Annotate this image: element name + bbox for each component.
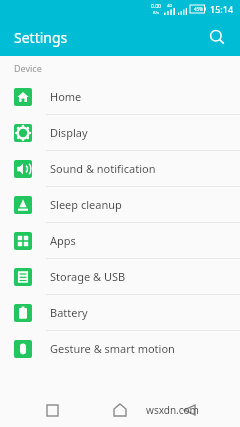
staticText: 0.00 (151, 3, 161, 10)
staticText: 45% (194, 6, 203, 12)
button[interactable]: Home (0, 79, 240, 115)
staticText: Gesture & smart motion (50, 341, 175, 356)
staticText: Storage & USB (50, 269, 126, 284)
staticText: Settings (14, 28, 68, 47)
staticText: K/s (153, 10, 159, 15)
staticText: Battery (50, 305, 88, 320)
button[interactable]: Sound & notification (0, 151, 240, 187)
button[interactable]: Recent apps (35, 393, 69, 427)
button[interactable]: Apps (0, 223, 240, 259)
button[interactable]: Search (202, 22, 232, 52)
button[interactable]: Storage & USB (0, 259, 240, 295)
button[interactable]: Display (0, 115, 240, 151)
staticText: Sleep cleanup (50, 197, 122, 212)
button[interactable]: Gesture & smart motion (0, 331, 240, 366)
staticText: Home (50, 89, 82, 104)
staticText: wsxdn.com (146, 403, 199, 417)
staticText: 4G (167, 3, 173, 8)
staticText: Sound & notification (50, 161, 156, 176)
button[interactable]: Home (103, 393, 137, 427)
staticText: Device (14, 62, 42, 74)
staticText: Display (50, 125, 88, 140)
button[interactable]: Battery (0, 295, 240, 331)
button[interactable]: Sleep cleanup (0, 187, 240, 223)
staticText: Apps (50, 233, 76, 248)
staticText: 15:14 (210, 3, 234, 15)
button[interactable]: Back (172, 393, 206, 427)
